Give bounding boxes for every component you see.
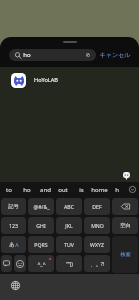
button[interactable]: ABC xyxy=(56,198,82,215)
staticText: 検索 xyxy=(120,251,131,258)
staticText: DEF xyxy=(92,203,102,210)
button[interactable]: ^_^ xyxy=(28,255,54,272)
staticText: WXYZ xyxy=(90,241,104,248)
staticText: GHI xyxy=(36,222,46,229)
staticText: PQRS xyxy=(34,241,48,248)
button[interactable]: ho xyxy=(18,182,36,197)
staticText: 、。?! xyxy=(90,260,105,267)
button[interactable]: Text editing xyxy=(1,255,12,272)
button[interactable]: is xyxy=(72,182,90,197)
staticText: 123 xyxy=(9,222,18,229)
staticText: out xyxy=(58,186,68,194)
staticText: ABC xyxy=(64,203,74,210)
button[interactable]: More suggestions xyxy=(126,182,139,197)
staticText: A xyxy=(15,241,19,248)
button[interactable]: 検索 xyxy=(112,236,138,273)
button[interactable]: PQRS xyxy=(28,236,54,253)
staticText: MNO xyxy=(91,222,104,229)
staticText: 空白 xyxy=(120,222,131,229)
staticText: ho xyxy=(23,186,31,194)
button[interactable]: JKL xyxy=(56,217,82,234)
button[interactable]: 記号 xyxy=(1,198,26,215)
button[interactable]: MNO xyxy=(84,217,110,234)
staticText: JKL xyxy=(65,222,73,229)
button[interactable]: DEF xyxy=(84,198,110,215)
button[interactable]: HoYoLAB xyxy=(11,68,139,92)
staticText: HoYoLAB xyxy=(34,76,58,84)
staticText: home xyxy=(91,186,108,194)
staticText: ^_^ xyxy=(37,260,46,267)
button[interactable]: WXYZ xyxy=(84,236,110,253)
button[interactable]: あ xyxy=(1,236,26,253)
button[interactable]: h xyxy=(108,182,126,197)
button[interactable]: Change keyboard language xyxy=(11,281,20,290)
staticText: ho xyxy=(23,51,31,59)
staticText: TUV xyxy=(64,241,74,248)
button[interactable]: TUV xyxy=(56,236,82,253)
button[interactable]: 、。?! xyxy=(84,255,110,272)
button[interactable]: 空白 xyxy=(112,217,138,234)
staticText: 記号 xyxy=(8,203,19,210)
button[interactable]: キャンセル xyxy=(97,48,133,62)
button[interactable]: and xyxy=(36,182,54,197)
staticText: あ xyxy=(9,241,15,248)
button[interactable]: to xyxy=(0,182,18,197)
staticText: キャンセル xyxy=(99,51,131,59)
button[interactable]: Emoji xyxy=(14,255,26,272)
button[interactable]: ho xyxy=(9,49,96,61)
staticText: and xyxy=(40,186,51,194)
button[interactable]: @#/&_ xyxy=(28,198,54,215)
button[interactable]: 123 xyxy=(1,217,26,234)
button[interactable]: Backspace xyxy=(112,198,138,215)
button[interactable]: out xyxy=(54,182,72,197)
button[interactable]: home xyxy=(90,182,108,197)
staticText: ””() xyxy=(66,260,73,267)
staticText: @#/&_ xyxy=(33,203,50,210)
button[interactable]: ””() xyxy=(56,255,82,272)
button[interactable]: Clear search xyxy=(86,53,90,57)
staticText: h xyxy=(115,186,119,194)
button[interactable]: GHI xyxy=(28,217,54,234)
staticText: to xyxy=(6,186,12,194)
staticText: is xyxy=(79,186,84,194)
